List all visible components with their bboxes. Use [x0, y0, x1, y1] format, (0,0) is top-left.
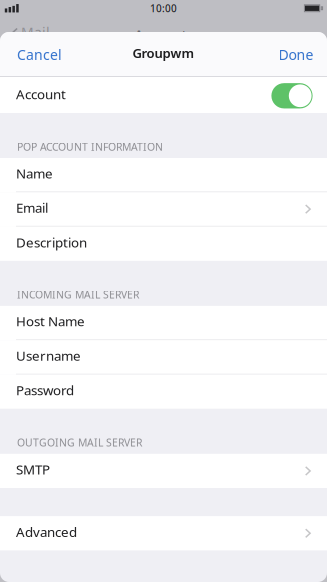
staticText: Account — [16, 85, 66, 103]
button[interactable]: Advanced — [0, 516, 327, 550]
button[interactable]: Account — [0, 77, 327, 113]
button[interactable]: Password — [0, 374, 327, 409]
button[interactable]: Email — [0, 192, 327, 227]
button[interactable]: Host Name — [0, 306, 327, 340]
staticText: Description — [16, 233, 87, 251]
staticText: Groupwm — [132, 44, 194, 62]
staticText: Accounts — [134, 26, 192, 43]
staticText: Name — [16, 164, 53, 182]
button[interactable]: SMTP — [0, 454, 327, 488]
staticText: POP ACCOUNT INFORMATION — [17, 139, 163, 154]
staticText: OUTGOING MAIL SERVER — [17, 435, 142, 449]
staticText: Password — [16, 381, 74, 399]
staticText: Host Name — [16, 312, 85, 330]
button[interactable]: Done — [266, 32, 327, 77]
staticText: INCOMING MAIL SERVER — [17, 287, 139, 302]
button[interactable]: Name — [0, 158, 327, 192]
button[interactable]: Username — [0, 340, 327, 374]
button[interactable]: Description — [0, 227, 327, 261]
staticText: Username — [16, 346, 81, 365]
staticText: Advanced — [16, 523, 77, 541]
staticText: 10:00 — [150, 1, 177, 15]
staticText: Cancel — [17, 45, 62, 64]
staticText: SMTP — [16, 460, 50, 479]
staticText: Done — [278, 45, 313, 64]
staticText: Email — [16, 198, 48, 217]
staticText: Mail — [21, 23, 50, 42]
button[interactable]: Cancel — [0, 32, 74, 77]
